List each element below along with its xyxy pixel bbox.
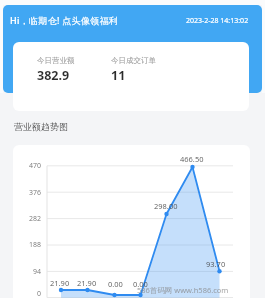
staticText: 376 bbox=[29, 188, 42, 198]
staticText: 2023-2-28 14:13:02 bbox=[186, 16, 249, 26]
staticText: 21.90 bbox=[50, 278, 70, 288]
staticText: 0 bbox=[37, 289, 42, 298]
staticText: Hi，临期仓! 点头像领福利 bbox=[10, 14, 119, 26]
staticText: 11 bbox=[111, 67, 126, 84]
staticText: 0.00 bbox=[133, 279, 148, 289]
staticText: 466.50 bbox=[180, 154, 204, 164]
staticText: 188 bbox=[29, 240, 42, 250]
staticText: 93.70 bbox=[206, 259, 226, 269]
button[interactable]: 今日营业额 bbox=[13, 42, 249, 111]
button[interactable] bbox=[13, 145, 250, 298]
staticText: 298.00 bbox=[154, 201, 178, 211]
staticText: 282 bbox=[29, 214, 42, 224]
staticText: 0.00 bbox=[108, 279, 123, 289]
staticText: 586首码网 www.h586.com bbox=[137, 285, 229, 295]
staticText: 今日成交订单 bbox=[111, 56, 156, 65]
staticText: 营业额趋势图 bbox=[14, 121, 68, 132]
staticText: 94 bbox=[33, 267, 42, 277]
staticText: 今日营业额 bbox=[37, 56, 75, 65]
staticText: 21.90 bbox=[77, 278, 97, 288]
button[interactable]: Hi，临期仓! 点头像领福利 bbox=[10, 14, 119, 26]
staticText: 382.9 bbox=[37, 67, 70, 84]
staticText: 470 bbox=[29, 161, 42, 171]
